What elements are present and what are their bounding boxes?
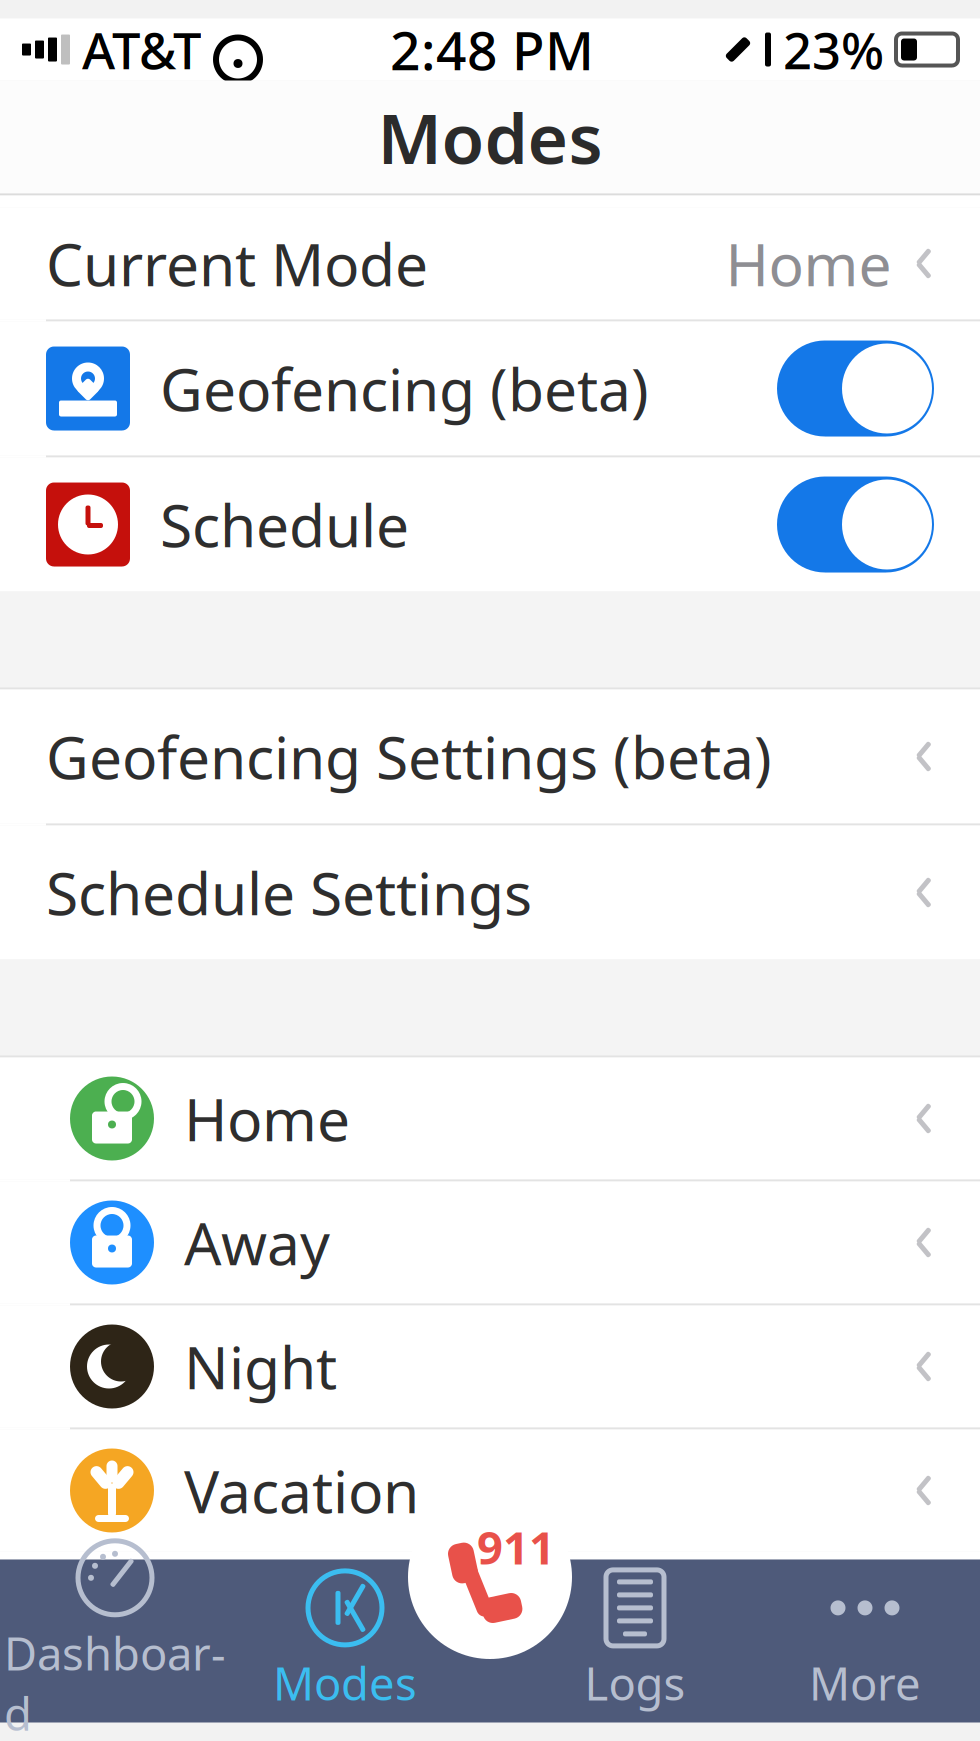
- staticText: Night: [184, 1327, 337, 1405]
- staticText: AT&T: [82, 16, 201, 83]
- button[interactable]: Vacation: [0, 1429, 980, 1551]
- staticText: Modes: [377, 91, 602, 183]
- staticText: More: [809, 1653, 921, 1713]
- staticText: Home: [726, 224, 892, 302]
- button[interactable]: Modes: [230, 1563, 460, 1718]
- staticText: 23%: [783, 16, 884, 83]
- button[interactable]: Call 911: [408, 1495, 572, 1659]
- staticText: Away: [184, 1203, 330, 1281]
- staticText: 911: [477, 1517, 555, 1577]
- button[interactable]: Logs: [520, 1563, 750, 1718]
- staticText: Geofencing (beta): [160, 349, 649, 427]
- staticText: Schedule Settings: [46, 853, 532, 931]
- staticText: Current Mode: [46, 224, 428, 302]
- button[interactable]: Schedule: [0, 457, 980, 591]
- button[interactable]: Night: [0, 1305, 980, 1427]
- button[interactable]: Schedule Settings: [0, 825, 980, 959]
- staticText: Geofencing Settings (beta): [46, 717, 772, 795]
- staticText: Schedule: [160, 485, 409, 563]
- button[interactable]: Away: [0, 1181, 980, 1303]
- staticText: Dashboard: [4, 1623, 226, 1741]
- button[interactable]: More: [750, 1563, 980, 1718]
- button[interactable]: Home: [0, 1057, 980, 1179]
- button[interactable]: Current Mode: [0, 207, 980, 319]
- button[interactable]: Dashboard: [0, 1563, 230, 1718]
- button[interactable]: Geofencing (beta): [0, 321, 980, 455]
- staticText: 2:48 PM: [390, 14, 594, 85]
- staticText: Logs: [584, 1653, 685, 1713]
- staticText: Home: [184, 1079, 350, 1157]
- staticText: Vacation: [184, 1451, 419, 1529]
- staticText: Modes: [273, 1653, 417, 1713]
- button[interactable]: Geofencing Settings (beta): [0, 689, 980, 823]
